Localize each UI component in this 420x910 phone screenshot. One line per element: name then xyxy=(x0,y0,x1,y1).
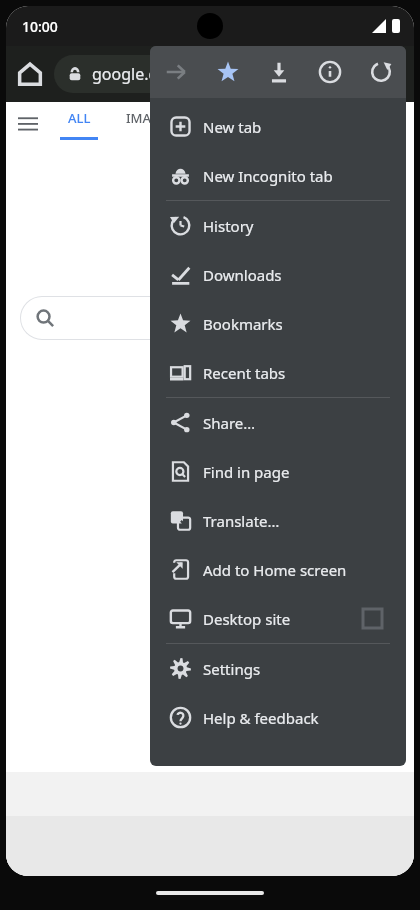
button[interactable]: Find in page xyxy=(150,447,406,496)
button[interactable]: Help & feedback xyxy=(150,693,406,742)
staticText: 10:00 xyxy=(22,17,58,36)
button[interactable] xyxy=(20,296,400,340)
staticText: Google offered in: xyxy=(159,376,261,392)
button[interactable]: New tab xyxy=(150,102,406,151)
button[interactable]: Share… xyxy=(150,398,406,447)
button[interactable]: Menu xyxy=(6,102,50,146)
staticText: Help & feedback xyxy=(203,708,319,728)
button[interactable]: New Incognito tab xyxy=(150,151,406,200)
staticText: Share… xyxy=(203,413,256,433)
button[interactable]: Desktop site xyxy=(150,594,406,643)
staticText: Translate… xyxy=(203,511,280,531)
button[interactable]: Forward xyxy=(150,46,202,98)
staticText: History xyxy=(203,216,254,236)
button[interactable]: Reload xyxy=(355,46,406,98)
button[interactable]: ALL xyxy=(60,109,98,140)
staticText: ALL xyxy=(68,109,91,127)
staticText: IMAGES xyxy=(126,109,175,127)
button[interactable]: History xyxy=(150,201,406,250)
staticText: Add to Home screen xyxy=(203,560,347,580)
button[interactable]: Settings xyxy=(150,644,406,693)
button[interactable]: Add to Home screen xyxy=(150,545,406,594)
button[interactable]: Downloads xyxy=(150,250,406,299)
button[interactable]: Home xyxy=(6,50,54,98)
staticText: Find in page xyxy=(203,462,290,482)
staticText: Desktop site xyxy=(203,609,291,629)
button[interactable]: Recent tabs xyxy=(150,348,406,397)
staticText: New Incognito tab xyxy=(203,166,333,186)
button[interactable]: Bookmark this page xyxy=(202,46,253,98)
staticText: Recent tabs xyxy=(203,363,286,383)
button[interactable]: google.com xyxy=(54,55,314,93)
staticText: Settings xyxy=(203,659,261,679)
button[interactable]: Bookmarks xyxy=(150,299,406,348)
staticText: Downloads xyxy=(203,265,282,285)
button[interactable]: Page info xyxy=(304,46,355,98)
staticText: New tab xyxy=(203,117,262,137)
staticText: Bookmarks xyxy=(203,314,283,334)
button[interactable]: Translate… xyxy=(150,496,406,545)
button[interactable]: IMAGES xyxy=(126,109,175,127)
staticText: google.com xyxy=(92,63,181,85)
button[interactable]: Download page xyxy=(253,46,304,98)
